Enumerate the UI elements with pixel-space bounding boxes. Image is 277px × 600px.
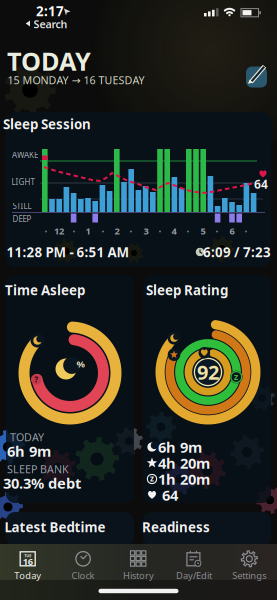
staticText: 12 (54, 225, 64, 237)
staticText: ? (34, 374, 38, 385)
staticText: Readiness (142, 518, 210, 536)
staticText: LIGHT (11, 177, 34, 187)
button[interactable]: Back to Search (22, 18, 70, 29)
staticText: TODAY (10, 430, 44, 444)
staticText: 11:28 PM - 6:51 AM (6, 243, 129, 261)
button[interactable]: Clock (56, 543, 111, 589)
staticText: 4 (171, 225, 176, 237)
button[interactable]: Day/Edit (166, 543, 221, 589)
button[interactable]: Settings (222, 543, 277, 589)
button[interactable]: Today (0, 543, 55, 589)
staticText: Sleep Rating (146, 281, 228, 299)
staticText: 2 (114, 225, 119, 237)
staticText: STILL (12, 201, 31, 211)
staticText: Today (14, 569, 41, 582)
staticText: 2:17 (36, 2, 64, 20)
staticText: z (234, 370, 239, 383)
staticText: DEEP (12, 214, 31, 224)
staticText: Search (33, 17, 67, 31)
staticText: 5 (200, 225, 205, 237)
staticText: 30.3% debt (3, 473, 81, 493)
staticText: Latest Bedtime (4, 518, 105, 536)
staticText: z (150, 473, 154, 484)
staticText: 6 (229, 225, 234, 237)
staticText: 64 (254, 176, 268, 192)
staticText: SLEEP BANK (7, 462, 69, 476)
staticText: Day/Edit (176, 569, 212, 582)
staticText: 15 MONDAY → 16 TUESDAY (7, 73, 144, 87)
staticText: Settings (232, 569, 266, 582)
staticText: 4h 20m (158, 453, 210, 473)
staticText: History (123, 569, 154, 582)
button[interactable]: Edit day (246, 62, 268, 87)
staticText: % (76, 358, 84, 370)
staticText: TODAY (7, 44, 91, 78)
staticText: Sleep Session (3, 115, 91, 133)
staticText: 6h 9m (7, 441, 51, 461)
staticText: TUE (24, 553, 31, 558)
staticText: 1 (85, 225, 90, 237)
staticText: Time Asleep (5, 281, 85, 299)
staticText: 16 (23, 555, 33, 567)
staticText: 64 (162, 485, 178, 505)
staticText: 92 (197, 359, 219, 385)
staticText: 3 (143, 225, 148, 237)
staticText: Clock (72, 569, 95, 582)
button[interactable]: History (111, 543, 166, 589)
staticText: 6:09 / 7:23 (203, 243, 271, 261)
staticText: 6h 9m (158, 437, 202, 457)
staticText: AWAKE (12, 150, 38, 160)
staticText: 1h 20m (158, 469, 210, 489)
